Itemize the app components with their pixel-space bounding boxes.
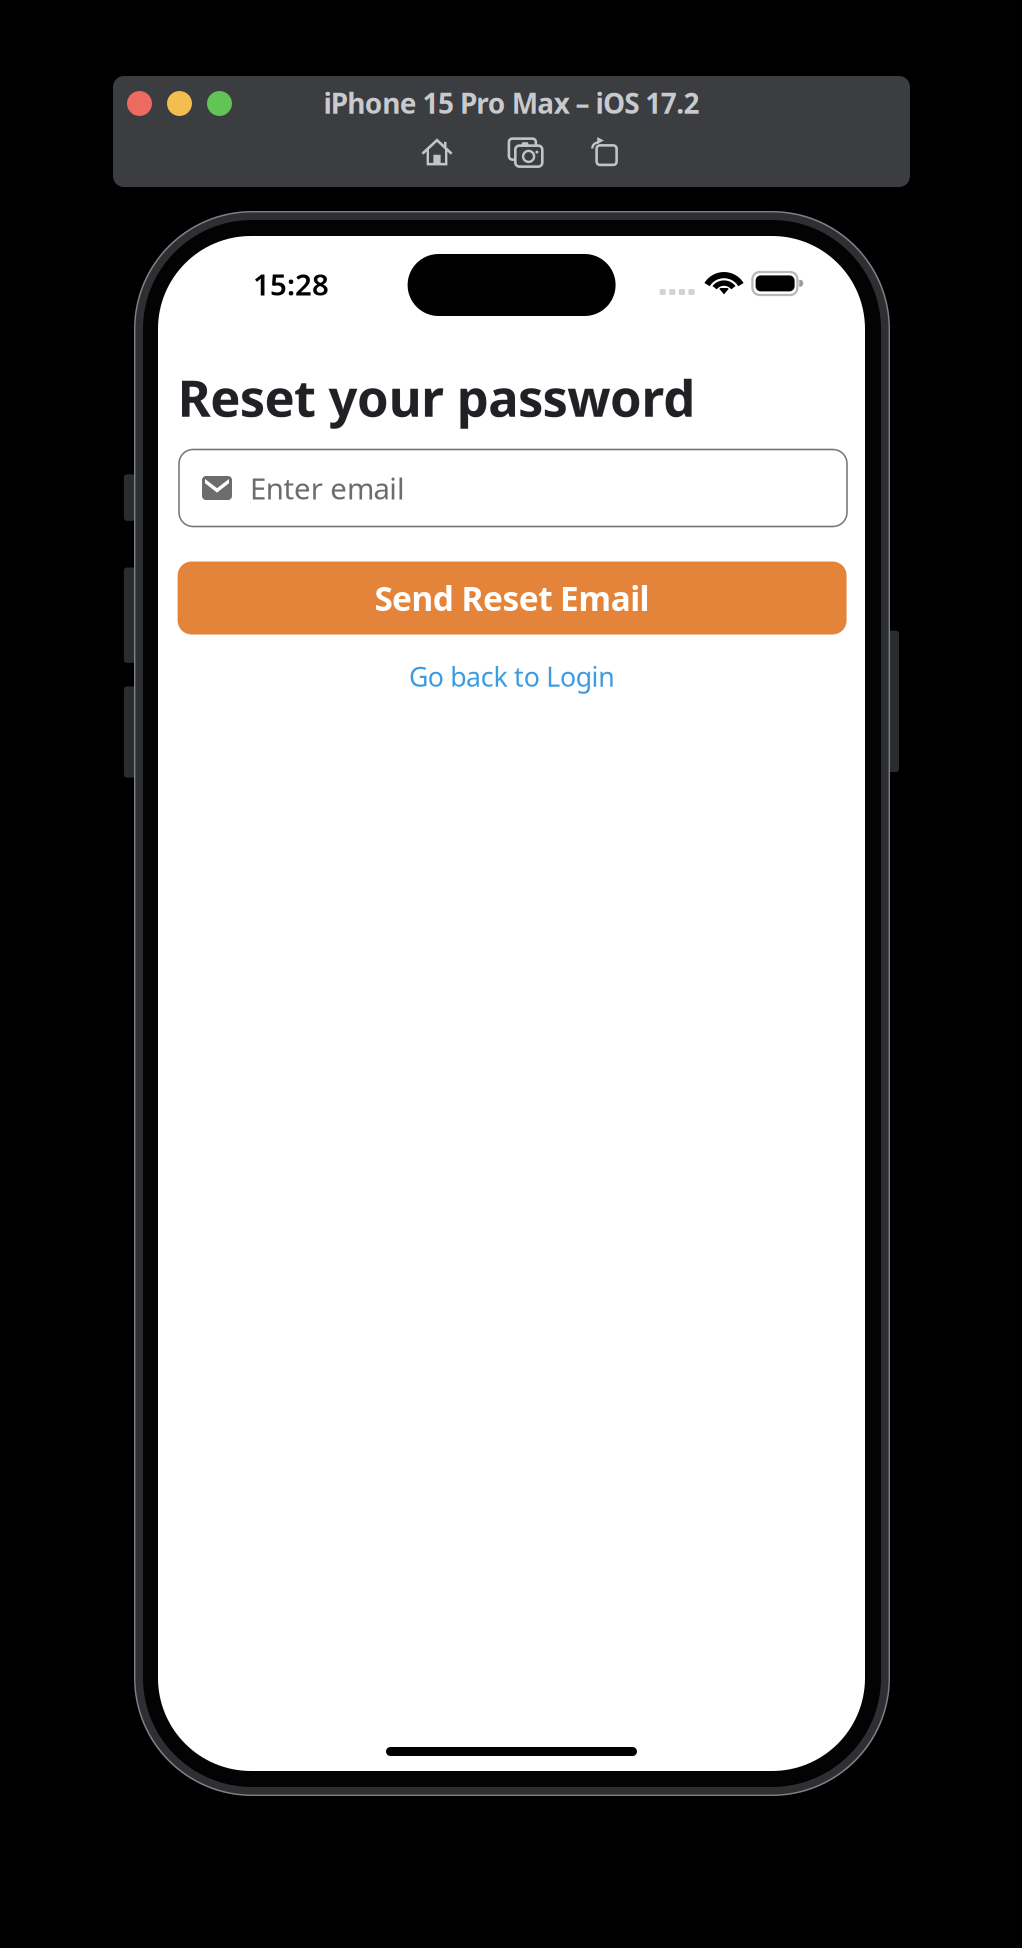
button[interactable]: Send Reset Email: [178, 561, 847, 634]
staticText: Enter email: [250, 468, 405, 507]
button[interactable]: Rotate: [591, 137, 617, 165]
button[interactable]: Screenshot: [509, 139, 542, 167]
staticText: Reset your password: [177, 363, 695, 431]
button[interactable]: Close window: [127, 91, 152, 116]
button[interactable]: Go back to Login: [158, 656, 865, 696]
button[interactable]: Zoom window: [207, 91, 232, 116]
staticText: iPhone 15 Pro Max – iOS 17.2: [323, 84, 700, 122]
button[interactable]: Enter email: [179, 449, 847, 526]
button[interactable]: Home: [421, 138, 452, 166]
staticText: Send Reset Email: [375, 576, 650, 620]
staticText: Go back to Login: [409, 659, 614, 694]
staticText: 15:28: [253, 264, 329, 303]
button[interactable]: Minimise window: [167, 91, 192, 116]
